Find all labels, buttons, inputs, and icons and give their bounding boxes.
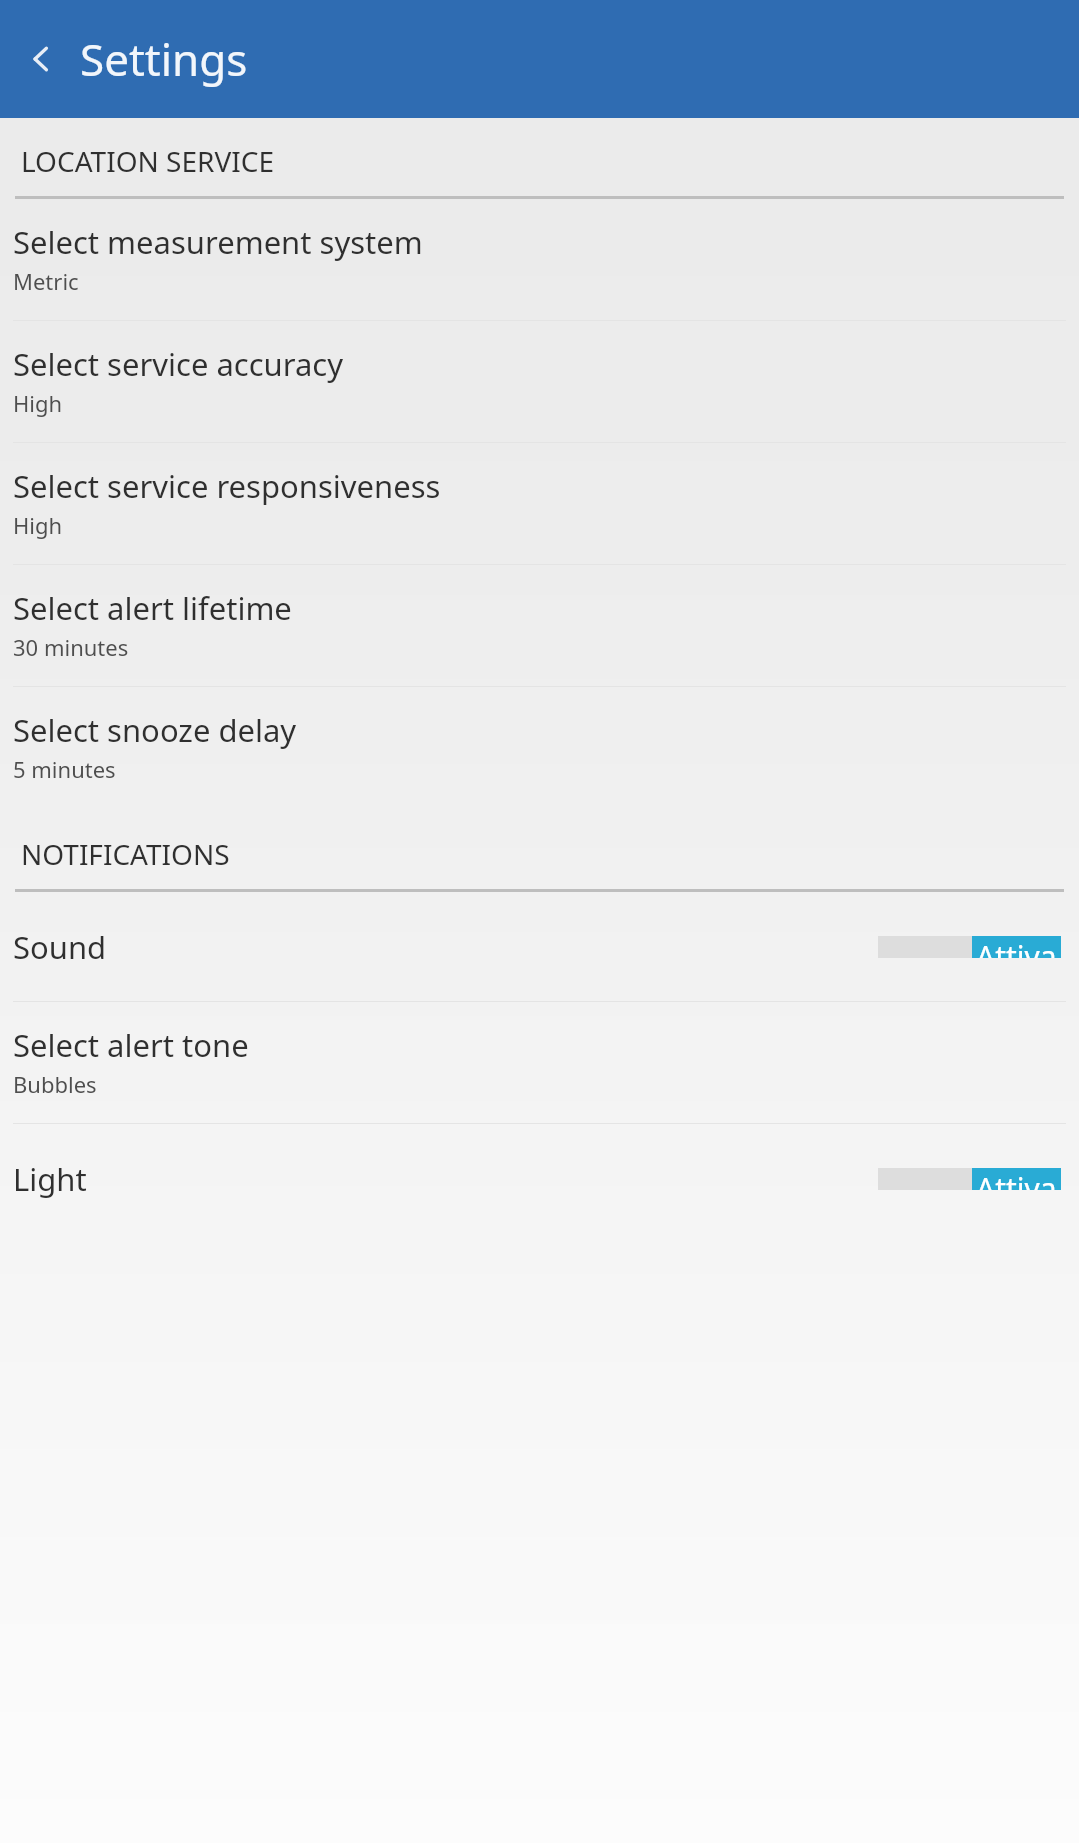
staticText: Metric: [13, 266, 79, 296]
staticText: Sound: [13, 926, 878, 968]
staticText: High: [13, 510, 63, 540]
staticText: 30 minutes: [13, 632, 129, 662]
button[interactable]: Sound: [0, 892, 1079, 1001]
button[interactable]: Select alert lifetime: [0, 565, 1079, 686]
staticText: Select alert lifetime: [13, 587, 292, 629]
button[interactable]: Select snooze delay: [0, 687, 1079, 808]
staticText: Select alert tone: [13, 1024, 249, 1066]
staticText: 5 minutes: [13, 754, 116, 784]
button[interactable]: Back: [12, 30, 70, 88]
staticText: Settings: [80, 29, 248, 89]
button[interactable]: Select measurement system: [0, 199, 1079, 320]
staticText: Light: [13, 1158, 878, 1200]
button[interactable]: Light: [0, 1124, 1079, 1233]
staticText: Select service accuracy: [13, 343, 343, 385]
staticText: High: [13, 388, 63, 418]
staticText: Select measurement system: [13, 221, 423, 263]
staticText: NOTIFICATIONS: [21, 835, 230, 873]
button[interactable]: Select service responsiveness: [0, 443, 1079, 564]
button[interactable]: Select alert tone: [0, 1002, 1079, 1123]
staticText: LOCATION SERVICE: [21, 142, 275, 180]
staticText: Bubbles: [13, 1069, 97, 1099]
staticText: Select service responsiveness: [13, 465, 441, 507]
staticText: Attiva: [976, 1168, 1057, 1190]
staticText: Select snooze delay: [13, 709, 297, 751]
button[interactable]: Select service accuracy: [0, 321, 1079, 442]
staticText: Attiva: [976, 936, 1057, 958]
